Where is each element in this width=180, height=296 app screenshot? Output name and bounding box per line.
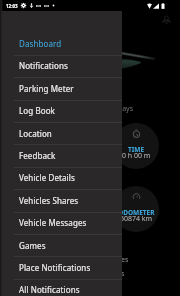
staticText: Parking Meter — [19, 83, 74, 94]
staticText: 50874 km — [120, 214, 153, 224]
button[interactable]: Feedback — [0, 145, 122, 167]
button[interactable]: Games — [0, 235, 122, 257]
staticText: 0 h 00 m — [122, 151, 151, 161]
staticText: Vehicle Messages — [19, 217, 87, 228]
staticText: Notifications — [19, 60, 68, 71]
button[interactable]: Parking Meter — [0, 78, 122, 100]
staticText: Place Notifications — [19, 262, 91, 273]
staticText: Feedback — [19, 150, 56, 161]
staticText: Location — [19, 128, 52, 139]
button[interactable]: Log Book — [0, 100, 122, 122]
staticText: Games — [19, 240, 46, 251]
staticText: Vehicles Shares — [19, 195, 79, 206]
staticText: TIME — [128, 145, 145, 154]
button[interactable]: Location — [0, 123, 122, 145]
button[interactable]: Vehicle Details — [0, 167, 122, 189]
staticText: Vehicle Details — [19, 172, 75, 183]
button[interactable]: Notifications — [0, 55, 122, 77]
staticText: 6 days — [112, 104, 133, 114]
button[interactable]: ODOMETER — [113, 186, 159, 232]
button[interactable]: Vehicles Shares — [0, 190, 122, 212]
button[interactable]: Account — [161, 16, 172, 27]
staticText: s — [121, 269, 125, 279]
button[interactable]: Vehicle Messages — [0, 212, 122, 234]
staticText: 12:03 — [6, 3, 18, 9]
button[interactable]: TIME — [113, 123, 159, 169]
button[interactable]: Dashboard — [0, 33, 122, 55]
staticText: es — [121, 255, 129, 265]
staticText: Log Book — [19, 105, 55, 116]
staticText: All Notifications — [19, 284, 80, 295]
staticText: Dashboard — [19, 38, 62, 49]
staticText: ODOMETER — [118, 208, 155, 217]
button[interactable]: All Notifications — [0, 279, 122, 296]
button[interactable]: Place Notifications — [0, 257, 122, 279]
